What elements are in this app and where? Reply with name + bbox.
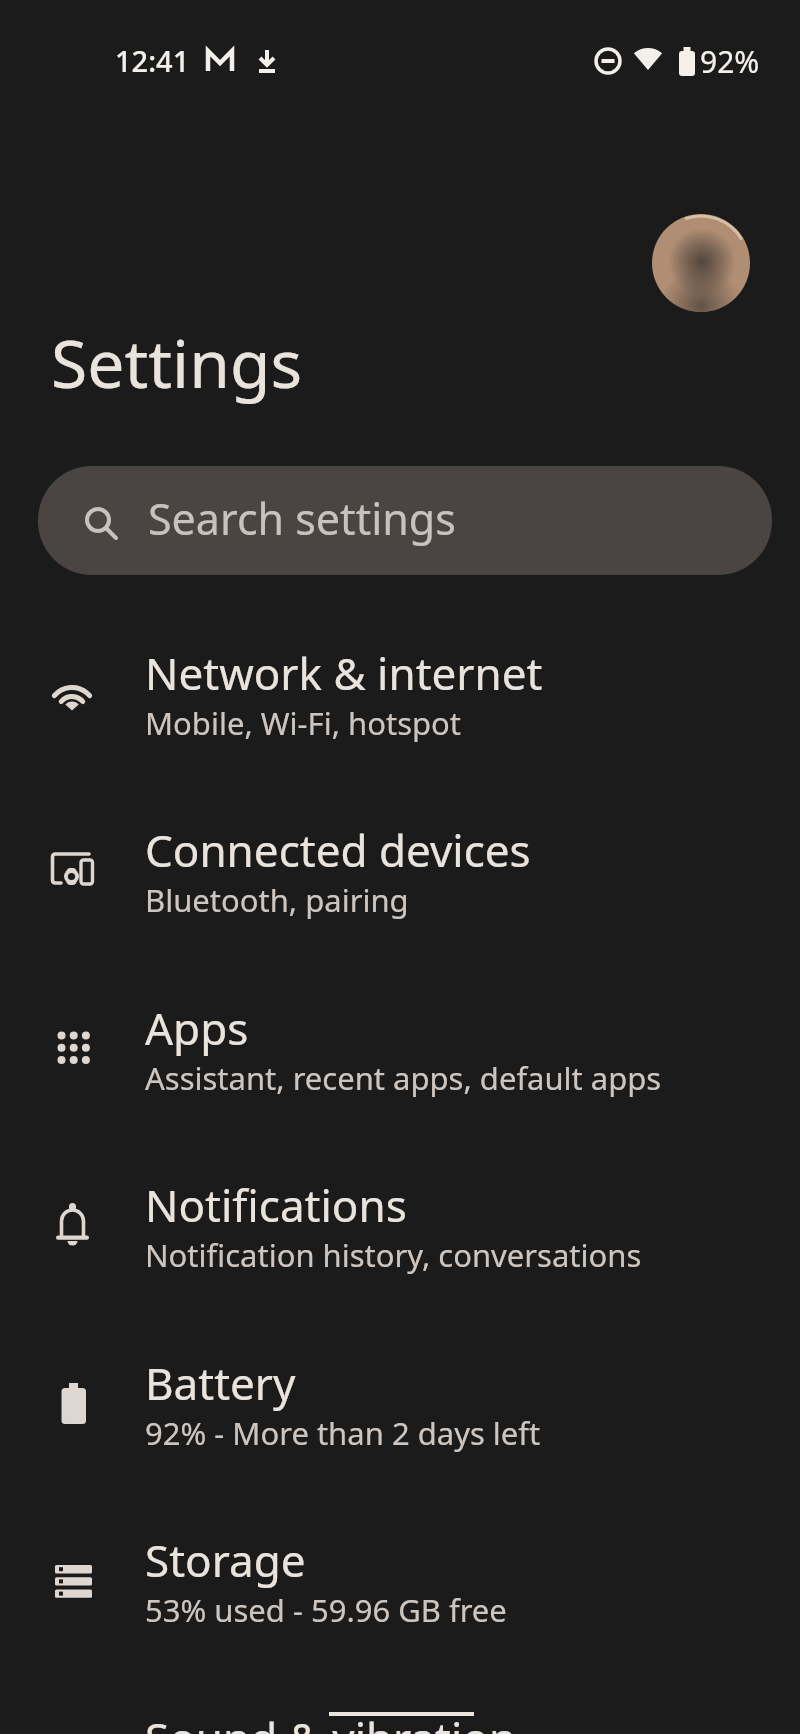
staticText: Bluetooth, pairing	[145, 879, 409, 921]
staticText: 12:41	[115, 41, 190, 80]
button[interactable]: Sound & vibration	[0, 1680, 800, 1734]
staticText: Search settings	[148, 489, 456, 548]
staticText: Network & internet	[145, 643, 543, 703]
staticText: Settings	[51, 317, 303, 407]
staticText: 92% - More than 2 days left	[145, 1412, 541, 1454]
staticText: Mobile, Wi-Fi, hotspot	[145, 702, 462, 744]
staticText: Apps	[145, 998, 249, 1058]
button[interactable]: Notifications	[0, 1147, 800, 1324]
button[interactable]: Apps	[0, 970, 800, 1147]
button[interactable]: Network & internet	[0, 615, 800, 792]
staticText: 92%	[700, 41, 760, 82]
button[interactable]: Connected devices	[0, 792, 800, 969]
button[interactable]	[652, 214, 750, 312]
staticText: 53% used - 59.96 GB free	[145, 1589, 507, 1631]
staticText: Connected devices	[145, 820, 531, 880]
button[interactable]: Search settings	[38, 466, 772, 575]
staticText: Battery	[145, 1353, 296, 1413]
button[interactable]: Storage	[0, 1502, 800, 1679]
staticText: Sound & vibration	[145, 1708, 517, 1734]
staticText: Assistant, recent apps, default apps	[145, 1057, 662, 1099]
staticText: Storage	[145, 1530, 306, 1590]
button[interactable]: Battery	[0, 1325, 800, 1502]
staticText: Notification history, conversations	[145, 1234, 642, 1276]
staticText: Notifications	[145, 1175, 407, 1235]
